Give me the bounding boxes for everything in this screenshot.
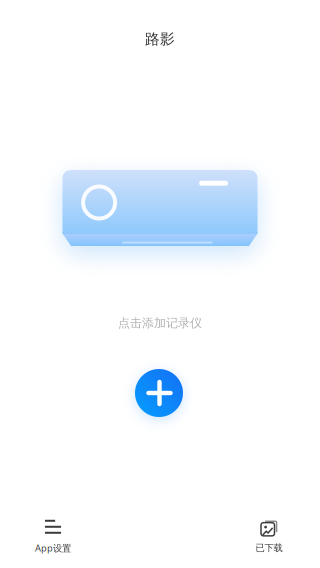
button[interactable]: 已下载 [218,519,320,555]
staticText: App设置 [35,542,71,554]
staticText: 路影 [145,30,175,48]
staticText: 点击添加记录仪 [118,316,202,330]
staticText: 已下载 [255,542,282,554]
button[interactable]: 添加记录仪 [135,369,183,417]
button[interactable]: App设置 [0,519,106,555]
